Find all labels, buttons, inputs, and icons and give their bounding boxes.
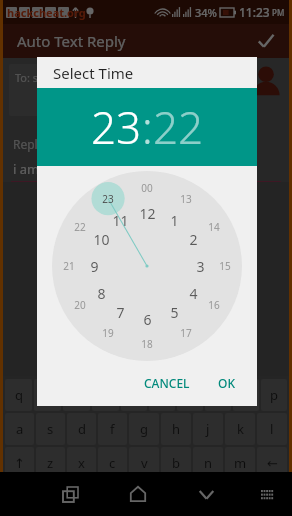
button[interactable]: m: [225, 447, 255, 479]
button[interactable]: t: [121, 379, 147, 411]
staticText: h: [172, 420, 181, 438]
staticText: 2: [189, 230, 198, 249]
button[interactable]: o: [233, 379, 259, 411]
button[interactable]: 1: [161, 207, 187, 233]
staticText: Auto Text Reply: [17, 31, 126, 51]
button[interactable]: 5: [161, 299, 187, 325]
staticText: 20: [74, 298, 86, 312]
button[interactable]: 2: [180, 226, 206, 252]
button[interactable]: Recents: [55, 479, 85, 509]
staticText: Select Time: [53, 63, 134, 83]
staticText: 34%: [195, 5, 217, 20]
button[interactable]: 23: [95, 186, 121, 212]
staticText: 00: [141, 181, 153, 195]
button[interactable]: k: [225, 413, 255, 445]
staticText: 10: [93, 230, 110, 249]
staticText: CANCEL: [144, 375, 190, 391]
button[interactable]: r: [92, 379, 119, 411]
button[interactable]: 19: [95, 320, 121, 346]
staticText: Reply: [13, 136, 44, 152]
staticText: k: [237, 420, 244, 438]
staticText: b: [172, 454, 180, 472]
button[interactable]: z: [36, 447, 65, 479]
button[interactable]: q: [5, 379, 32, 411]
button[interactable]: OK: [210, 369, 243, 397]
button[interactable]: d: [67, 413, 96, 445]
button[interactable]: i: [205, 379, 231, 411]
button[interactable]: ↑: [5, 447, 34, 479]
button[interactable]: 23: [91, 97, 142, 157]
button[interactable]: h: [161, 413, 191, 445]
button[interactable]: 21: [56, 253, 82, 279]
button[interactable]: 12#: [5, 481, 100, 513]
staticText: 11: [112, 211, 129, 230]
button[interactable]: g: [129, 413, 159, 445]
button[interactable]: ↵: [259, 481, 287, 513]
button[interactable]: 22: [67, 214, 93, 240]
staticText: 14: [208, 220, 220, 234]
button[interactable]: Home: [123, 479, 153, 509]
staticText: 9: [90, 257, 99, 276]
button[interactable]: 8: [88, 280, 114, 306]
button[interactable]: p: [261, 379, 287, 411]
button[interactable]: 10: [88, 226, 114, 252]
button[interactable]: 14: [201, 214, 227, 240]
staticText: 13: [180, 192, 192, 206]
button[interactable]: CANCEL: [136, 369, 198, 397]
staticText: PM: [272, 7, 285, 18]
button[interactable]: 7: [107, 299, 133, 325]
button[interactable]: y: [149, 379, 175, 411]
button[interactable]: 13: [173, 186, 199, 212]
staticText: ↑: [14, 456, 25, 471]
staticText: ←: [267, 456, 278, 471]
button[interactable]: 11: [107, 207, 133, 233]
button[interactable]: 16: [201, 292, 227, 318]
button[interactable]: 12: [134, 200, 160, 226]
button[interactable]: 9: [81, 253, 107, 279]
button[interactable]: 4: [180, 280, 206, 306]
staticText: :: [142, 97, 153, 157]
button[interactable]: e: [63, 379, 90, 411]
button[interactable]: 15: [212, 253, 238, 279]
button[interactable]: 00: [134, 175, 160, 201]
button[interactable]: n: [193, 447, 223, 479]
button[interactable]: Save: [253, 28, 279, 54]
staticText: 6: [143, 310, 152, 329]
staticText: 15: [219, 259, 231, 273]
staticText: 21: [63, 259, 75, 273]
button[interactable]: Back: [191, 479, 221, 509]
staticText: c: [109, 454, 116, 472]
button[interactable]: x: [67, 447, 96, 479]
button[interactable]: 17: [173, 320, 199, 346]
staticText: f: [110, 420, 115, 438]
button[interactable]: ←: [257, 447, 287, 479]
button[interactable]: b: [161, 447, 191, 479]
button[interactable]: 20: [67, 292, 93, 318]
staticText: 12: [139, 204, 156, 223]
button[interactable]: [132, 481, 227, 513]
button[interactable]: a: [5, 413, 34, 445]
staticText: a: [16, 420, 24, 438]
button[interactable]: 18: [134, 331, 160, 357]
button[interactable]: w: [34, 379, 61, 411]
button[interactable]: Switch keyboard: [255, 482, 279, 506]
staticText: 5: [170, 303, 179, 322]
button[interactable]: 22: [153, 97, 204, 157]
staticText: 8: [97, 284, 106, 303]
button[interactable]: c: [98, 447, 127, 479]
button[interactable]: 6: [134, 306, 160, 332]
button[interactable]: v: [129, 447, 159, 479]
button[interactable]: 3: [187, 253, 213, 279]
staticText: 1: [170, 211, 179, 230]
button[interactable]: u: [177, 379, 203, 411]
